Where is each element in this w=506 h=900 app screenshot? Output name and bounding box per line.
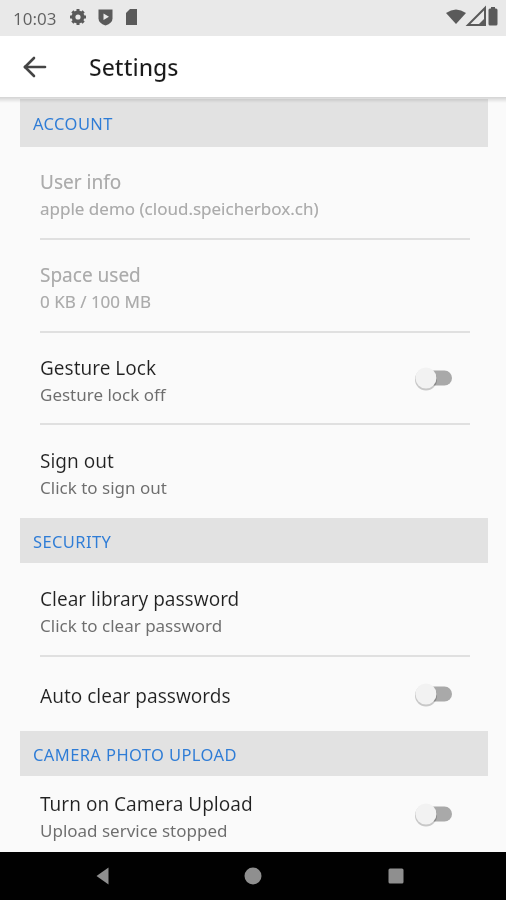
button[interactable]: Clear library password — [0, 563, 506, 655]
button[interactable]: Turn on Camera Upload — [0, 776, 506, 852]
staticText: Turn on Camera Upload — [40, 791, 253, 817]
staticText: Auto clear passwords — [40, 683, 231, 709]
button[interactable]: User info — [0, 147, 506, 238]
staticText: Upload service stopped — [40, 819, 228, 842]
button[interactable] — [372, 852, 420, 900]
staticText: Click to sign out — [40, 476, 167, 499]
staticText: CAMERA PHOTO UPLOAD — [33, 743, 237, 765]
button[interactable]: Sign out — [0, 425, 506, 518]
staticText: 0 KB / 100 MB — [40, 290, 151, 313]
staticText: Clear library password — [40, 586, 240, 612]
button[interactable] — [79, 852, 127, 900]
staticText: apple demo (cloud.speicherbox.ch) — [40, 197, 319, 220]
button[interactable]: Space used — [0, 240, 506, 331]
button[interactable] — [412, 356, 456, 400]
staticText: Space used — [40, 262, 141, 288]
button[interactable] — [412, 672, 456, 716]
button[interactable]: Auto clear passwords — [0, 657, 506, 731]
button[interactable] — [229, 852, 277, 900]
button[interactable]: Gesture Lock — [0, 333, 506, 423]
staticText: Gesture lock off — [40, 383, 166, 406]
staticText: Gesture Lock — [40, 355, 157, 381]
staticText: Click to clear password — [40, 614, 223, 637]
staticText: User info — [40, 169, 122, 195]
staticText: SECURITY — [33, 530, 112, 552]
staticText: 10:03 — [13, 7, 57, 30]
button[interactable] — [13, 45, 57, 89]
staticText: Sign out — [40, 448, 114, 474]
button[interactable] — [412, 792, 456, 836]
staticText: ACCOUNT — [33, 112, 113, 134]
staticText: Settings — [89, 51, 179, 82]
